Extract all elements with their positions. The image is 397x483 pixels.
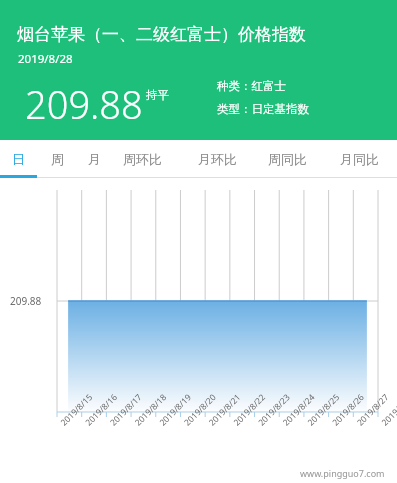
button[interactable]: 周 bbox=[39, 140, 76, 178]
staticText: 月 bbox=[88, 151, 101, 167]
staticText: 周 bbox=[51, 151, 64, 167]
staticText: 周同比 bbox=[268, 151, 307, 167]
staticText: 烟台苹果（一、二级红富士）价格指数 bbox=[17, 24, 306, 45]
staticText: 209.88 bbox=[25, 78, 143, 130]
button[interactable]: 月同比 bbox=[332, 140, 387, 178]
staticText: 月同比 bbox=[340, 151, 379, 167]
staticText: 种类：红富士 bbox=[217, 79, 286, 93]
staticText: 持平 bbox=[146, 88, 169, 102]
button[interactable]: 周同比 bbox=[260, 140, 315, 178]
staticText: 类型：日定基指数 bbox=[217, 102, 309, 116]
staticText: 周环比 bbox=[123, 151, 162, 167]
button[interactable]: 月环比 bbox=[190, 140, 245, 178]
button[interactable]: 周环比 bbox=[115, 140, 170, 178]
button[interactable]: 月 bbox=[76, 140, 113, 178]
staticText: 日 bbox=[12, 151, 25, 167]
button[interactable]: 日 bbox=[0, 140, 37, 178]
staticText: 2019/8/28 bbox=[18, 51, 73, 67]
staticText: 月环比 bbox=[198, 151, 237, 167]
